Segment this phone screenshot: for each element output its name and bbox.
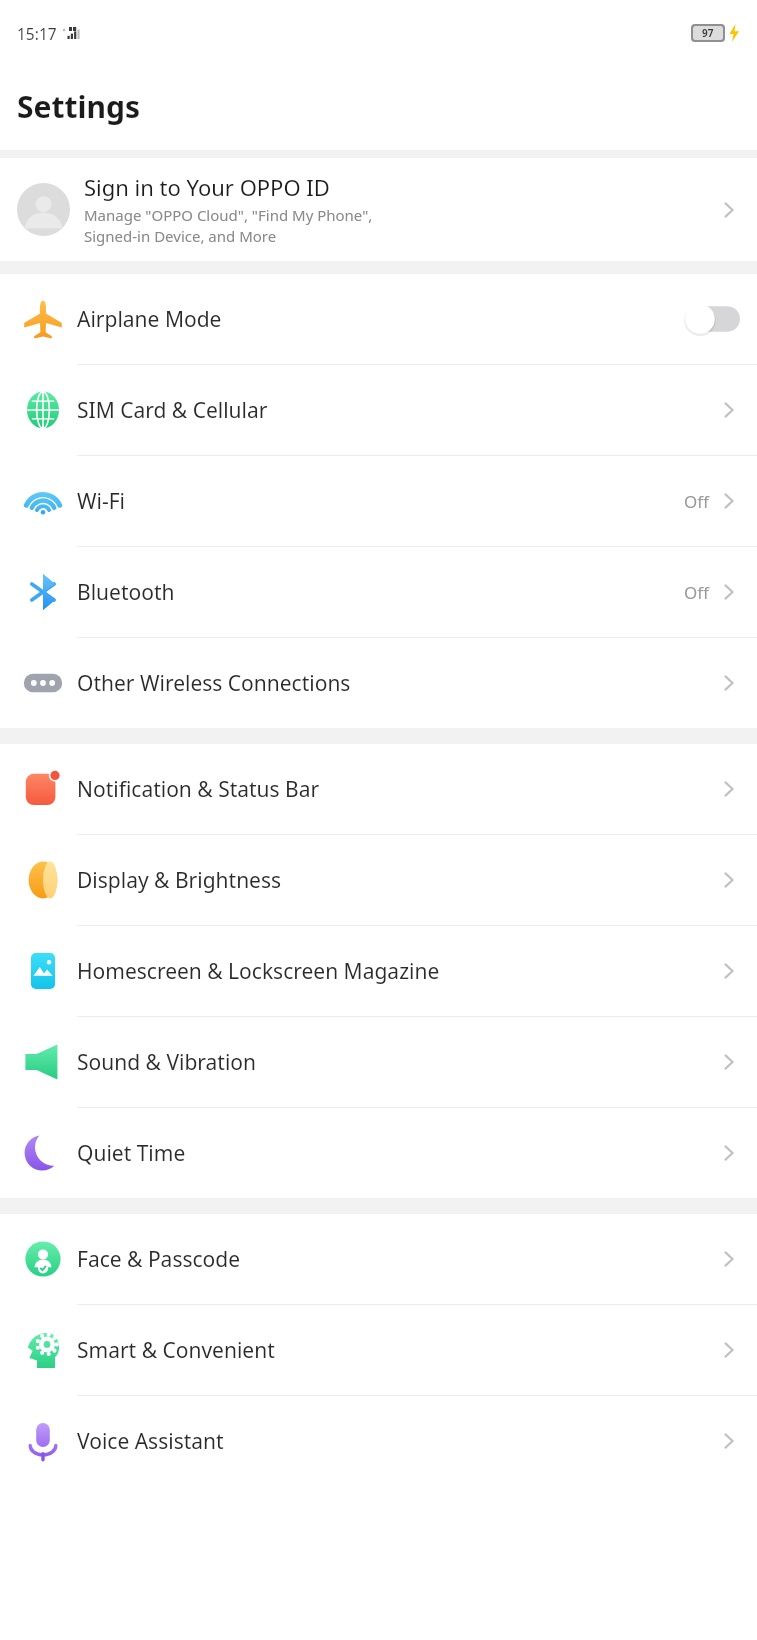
button[interactable]: Other Wireless Connections xyxy=(0,638,757,728)
staticText: Off xyxy=(684,490,709,513)
button[interactable]: SIM Card & Cellular xyxy=(0,365,757,455)
button[interactable]: Notification & Status Bar xyxy=(0,744,757,834)
staticText: Voice Assistant xyxy=(77,1427,224,1456)
button[interactable]: Sound & Vibration xyxy=(0,1017,757,1107)
button[interactable]: Wi-Fi xyxy=(0,456,757,546)
staticText: Notification & Status Bar xyxy=(77,775,320,804)
staticText: 97 xyxy=(702,26,714,40)
staticText: Display & Brightness xyxy=(77,866,282,895)
staticText: Bluetooth xyxy=(77,578,175,607)
button[interactable]: Face & Passcode xyxy=(0,1214,757,1304)
staticText: Sound & Vibration xyxy=(77,1048,257,1077)
button[interactable]: Bluetooth xyxy=(0,547,757,637)
staticText: Off xyxy=(684,581,709,604)
button[interactable]: Airplane Mode toggle, off xyxy=(684,303,740,335)
staticText: Homescreen & Lockscreen Magazine xyxy=(77,957,440,986)
staticText: SIM Card & Cellular xyxy=(77,396,268,425)
staticText: Manage "OPPO Cloud", "Find My Phone", Si… xyxy=(84,205,373,247)
button[interactable]: Homescreen & Lockscreen Magazine xyxy=(0,926,757,1016)
staticText: Airplane Mode xyxy=(77,305,222,334)
button[interactable]: Airplane Mode xyxy=(0,274,757,364)
button[interactable]: Smart & Convenient xyxy=(0,1305,757,1395)
staticText: Other Wireless Connections xyxy=(77,669,351,698)
staticText: Sign in to Your OPPO ID xyxy=(84,172,330,202)
staticText: Face & Passcode xyxy=(77,1245,241,1274)
button[interactable]: Voice Assistant xyxy=(0,1396,757,1486)
button[interactable]: Quiet Time xyxy=(0,1108,757,1198)
staticText: Settings xyxy=(17,86,140,127)
staticText: Wi-Fi xyxy=(77,487,126,516)
staticText: Quiet Time xyxy=(77,1139,186,1168)
button[interactable]: Display & Brightness xyxy=(0,835,757,925)
staticText: Smart & Convenient xyxy=(77,1336,275,1365)
button[interactable]: Sign in to Your OPPO ID xyxy=(0,158,757,261)
staticText: 15:17 xyxy=(17,23,57,44)
